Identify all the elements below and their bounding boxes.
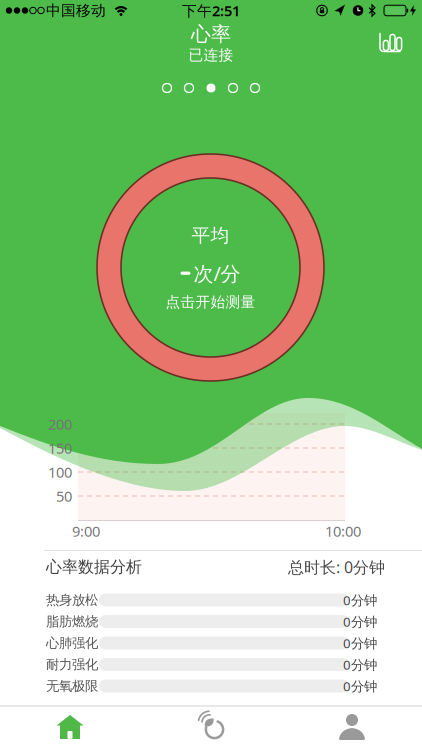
staticText: 0分钟 (343, 656, 377, 673)
staticText: 脂肪燃烧 (46, 613, 98, 630)
staticText: 次/分 (193, 260, 240, 286)
button[interactable]: 首页 (40, 707, 100, 747)
staticText: 0分钟 (343, 634, 377, 652)
staticText: 200 (48, 414, 72, 434)
staticText: 下午2:51 (182, 1, 240, 20)
staticText: 总时长: 0分钟 (288, 556, 385, 578)
staticText: 已连接 (188, 46, 233, 64)
staticText: 10:00 (325, 521, 361, 541)
staticText: 无氧极限 (46, 678, 98, 694)
staticText: 心肺强化 (46, 635, 98, 651)
staticText: 50 (56, 486, 72, 506)
staticText: 心率 (191, 22, 231, 46)
staticText: 点击开始测量 (165, 293, 255, 311)
button[interactable]: 测量 (183, 707, 243, 747)
button[interactable]: 我的 (322, 707, 382, 747)
staticText: 0分钟 (343, 677, 377, 695)
staticText: 热身放松 (46, 592, 98, 608)
staticText: 100 (48, 462, 72, 482)
staticText: 150 (48, 438, 72, 458)
staticText: 9:00 (72, 521, 100, 541)
button[interactable]: 历史记录 (373, 25, 407, 59)
staticText: 平均 (191, 224, 229, 247)
staticText: 耐力强化 (46, 656, 98, 673)
staticText: 0分钟 (343, 613, 377, 630)
staticText: 0分钟 (343, 591, 377, 609)
staticText: 心率数据分析 (46, 557, 142, 577)
staticText: 中国移动 (46, 1, 106, 19)
button[interactable]: 平均 (95, 152, 325, 382)
